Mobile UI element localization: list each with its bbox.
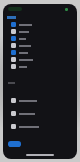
button[interactable] xyxy=(3,49,77,56)
button[interactable] xyxy=(3,21,77,28)
button[interactable] xyxy=(3,35,77,42)
button[interactable] xyxy=(3,63,77,70)
button[interactable] xyxy=(3,56,77,63)
button[interactable] xyxy=(3,42,77,49)
button[interactable] xyxy=(3,28,77,35)
button[interactable] xyxy=(3,94,77,107)
button[interactable] xyxy=(3,120,77,133)
button[interactable] xyxy=(3,107,77,120)
button[interactable] xyxy=(8,141,21,147)
